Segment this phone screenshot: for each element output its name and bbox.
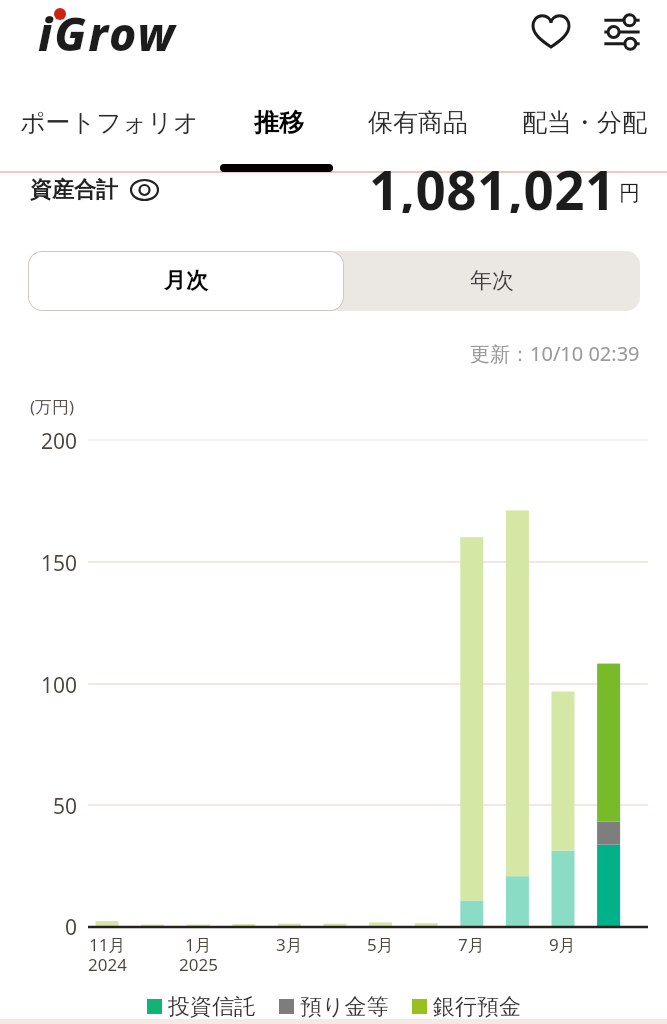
staticText: 1月 [185,933,212,955]
staticText: 7月 [458,933,485,955]
button[interactable] [528,8,574,54]
staticText: 預り金等 [300,993,389,1019]
staticText: 配当・分配 [522,107,647,138]
button[interactable]: 推移 [219,98,339,146]
staticText: 年次 [470,267,514,295]
staticText: 50 [53,792,78,818]
staticText: 月次 [164,267,208,295]
staticText: 資産合計 [30,176,118,204]
staticText: 2025 [179,953,218,975]
staticText: 200 [41,427,78,453]
staticText: ポートフォリオ [20,107,199,138]
button[interactable]: 年次 [344,251,640,311]
staticText: 円 [619,180,640,206]
button[interactable]: 配当・分配 [509,98,659,146]
staticText: 投資信託 [168,993,256,1019]
staticText: 推移 [254,107,304,138]
staticText: 1,081,021 [369,153,616,213]
staticText: 100 [41,671,78,697]
button[interactable]: 保有商品 [353,98,483,146]
button[interactable]: iGrow [38,2,177,65]
staticText: 2024 [88,953,127,975]
staticText: (万円) [30,395,75,418]
button[interactable] [598,8,646,56]
staticText: 銀行預金 [433,993,521,1019]
staticText: 150 [41,549,78,575]
staticText: 保有商品 [368,107,468,138]
staticText: 5月 [367,933,394,955]
button[interactable]: 月次 [28,251,344,311]
staticText: 更新：10/10 02:39 [470,340,640,366]
staticText: 11月 [89,933,126,955]
button[interactable]: ポートフォリオ [14,98,204,146]
staticText: iGrow [38,2,177,65]
staticText: 0 [65,913,78,939]
staticText: 3月 [276,933,303,955]
staticText: 9月 [549,933,576,955]
